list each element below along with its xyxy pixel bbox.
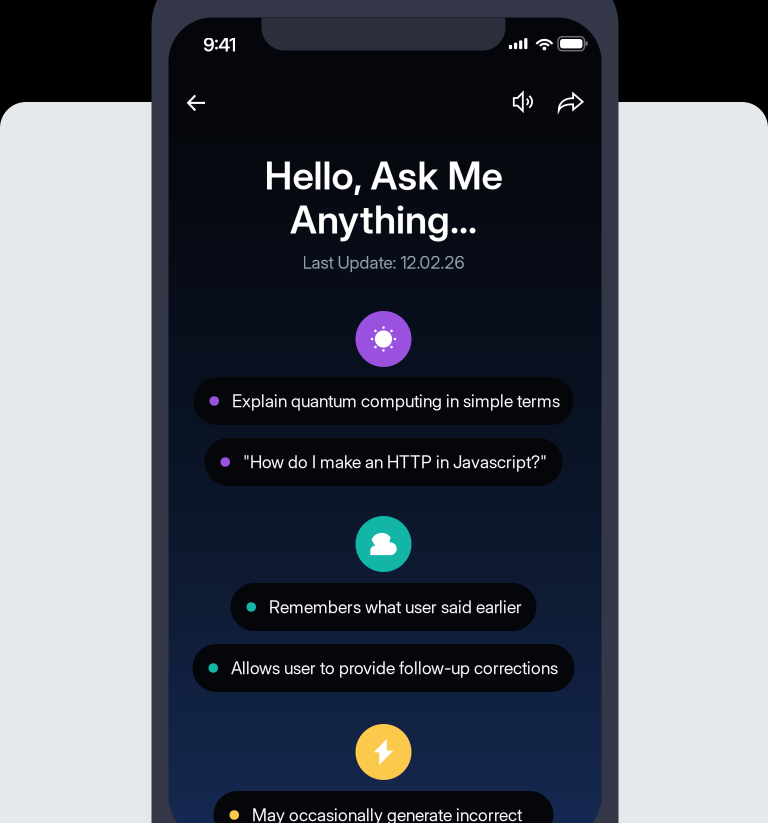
button[interactable]: May occasionally generate incorrect [213, 791, 553, 823]
staticText: "How do I make an HTTP in Javascript?" [243, 451, 547, 472]
button[interactable]: "How do I make an HTTP in Javascript?" [204, 438, 562, 486]
staticText: Hello, Ask Me [264, 152, 502, 199]
button[interactable]: Read aloud [503, 81, 545, 122]
staticText: Anything... [290, 196, 477, 243]
button[interactable]: Remembers what user said earlier [230, 583, 536, 631]
button[interactable]: Back [177, 84, 216, 122]
staticText: Explain quantum computing in simple term… [232, 390, 560, 411]
staticText: Remembers what user said earlier [269, 596, 522, 617]
staticText: May occasionally generate incorrect [252, 804, 522, 823]
staticText: 9:41 [203, 33, 236, 56]
button[interactable]: Share [547, 82, 594, 122]
staticText: Allows user to provide follow-up correct… [231, 657, 558, 678]
button[interactable]: Explain quantum computing in simple term… [193, 377, 573, 425]
staticText: Last Update: 12.02.26 [302, 252, 464, 273]
button[interactable]: Allows user to provide follow-up correct… [192, 644, 574, 692]
